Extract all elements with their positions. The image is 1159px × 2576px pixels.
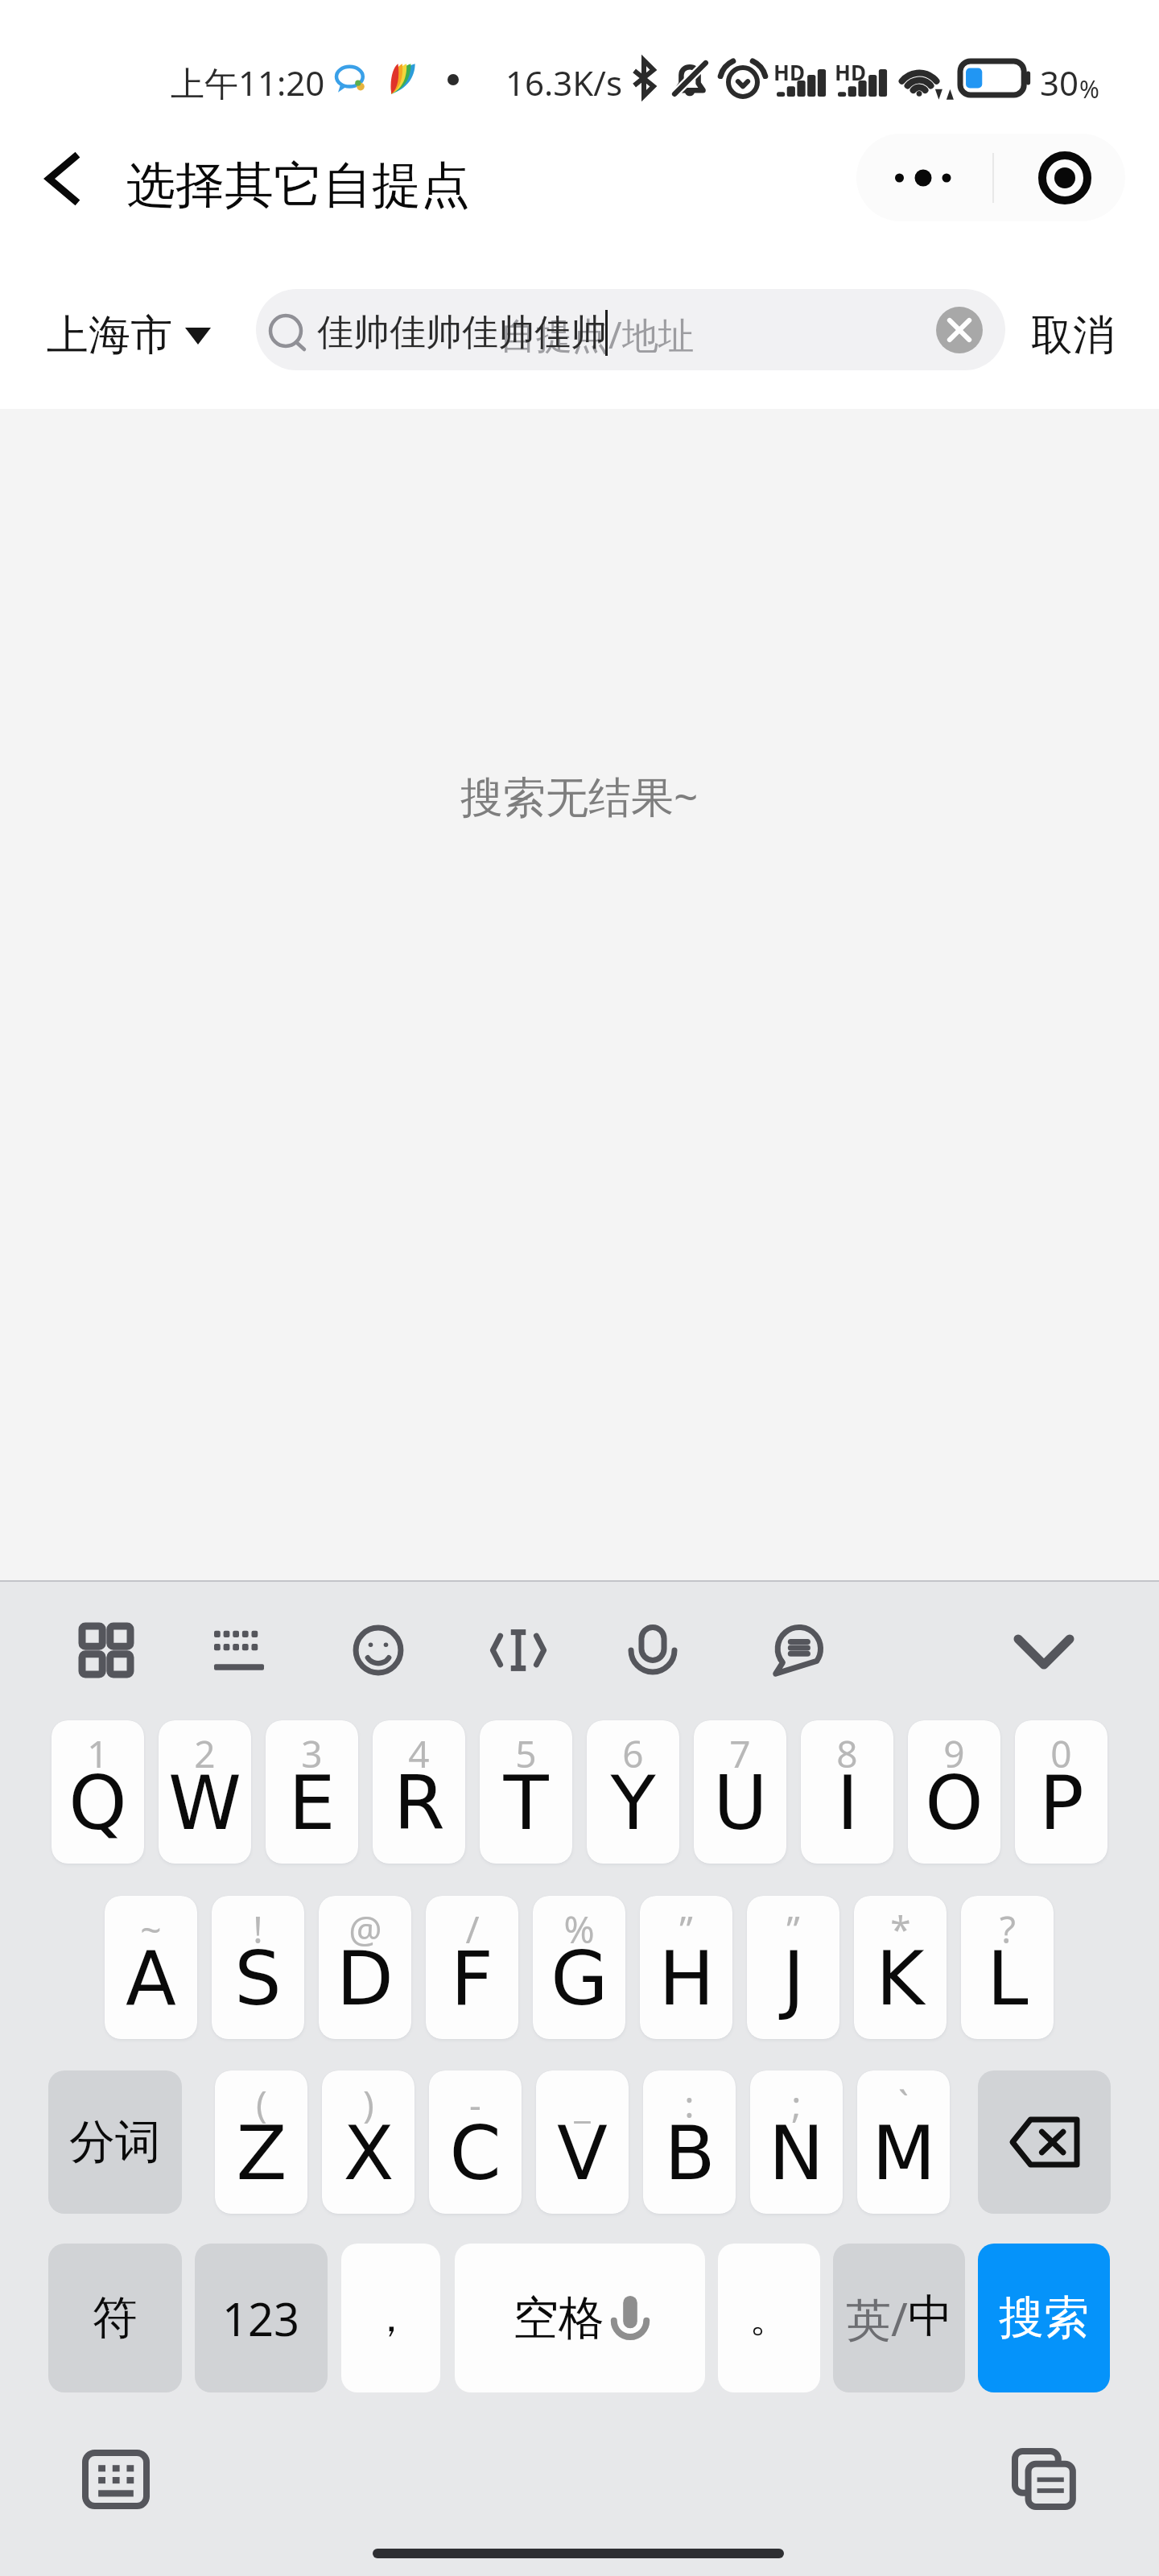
staticText: 5 xyxy=(515,1728,537,1779)
staticText: - xyxy=(469,2079,481,2129)
button[interactable]: * xyxy=(854,1896,947,2039)
staticText: 7 xyxy=(729,1728,751,1779)
staticText: 。 xyxy=(749,2293,790,2343)
button[interactable]: 3 xyxy=(266,1720,358,1864)
button[interactable]: 9 xyxy=(908,1720,1000,1864)
staticText: 9 xyxy=(943,1728,965,1779)
staticText: 2 xyxy=(194,1728,216,1779)
staticText: E xyxy=(288,1761,336,1847)
button[interactable]: 取消 xyxy=(1031,309,1115,362)
staticText: P xyxy=(1039,1761,1084,1847)
button[interactable]: 自提点/地址 xyxy=(256,289,1005,370)
staticText: V xyxy=(557,2111,608,2197)
staticText: ` xyxy=(898,2079,909,2129)
button[interactable]: 关闭 xyxy=(994,134,1125,221)
staticText: Z xyxy=(236,2111,287,2197)
staticText: ( xyxy=(256,2079,267,2129)
staticText: W xyxy=(168,1761,241,1847)
button[interactable]: 5 xyxy=(480,1720,572,1864)
button[interactable]: - xyxy=(429,2070,522,2214)
staticText: 上海市 xyxy=(47,309,172,362)
button[interactable]: 清除 xyxy=(936,307,983,353)
button[interactable]: 收起键盘 xyxy=(1005,1613,1083,1690)
button[interactable]: / xyxy=(426,1896,518,2039)
button[interactable]: ! xyxy=(212,1896,304,2039)
staticText: C xyxy=(449,2111,501,2197)
button[interactable]: ” xyxy=(747,1896,839,2039)
staticText: 上午11:20 xyxy=(171,60,325,100)
staticText: 自提点/地址 xyxy=(500,310,695,359)
button[interactable]: 退格 xyxy=(978,2070,1111,2214)
button[interactable]: ; xyxy=(750,2070,843,2214)
button[interactable]: 空格 xyxy=(455,2244,705,2392)
button[interactable]: 返回 xyxy=(30,147,94,211)
staticText: K xyxy=(876,1936,925,2022)
button[interactable]: 搜索 xyxy=(978,2244,1110,2392)
button[interactable]: ~ xyxy=(105,1896,197,2039)
button[interactable]: 分词 xyxy=(48,2070,182,2214)
staticText: O xyxy=(925,1761,984,1847)
button[interactable]: 0 xyxy=(1015,1720,1107,1864)
button[interactable]: @ xyxy=(319,1896,411,2039)
button[interactable]: ” xyxy=(640,1896,732,2039)
staticText: 英/ xyxy=(846,2288,908,2349)
staticText: H xyxy=(658,1936,715,2022)
staticText: 中 xyxy=(908,2288,953,2345)
button[interactable]: 面板 xyxy=(68,1612,145,1689)
button[interactable]: 7 xyxy=(694,1720,786,1864)
staticText: A xyxy=(126,1936,176,2022)
button[interactable]: 键盘设置 xyxy=(77,2441,155,2518)
button[interactable]: ( xyxy=(215,2070,307,2214)
button[interactable]: 1 xyxy=(52,1720,144,1864)
staticText: 符 xyxy=(93,2289,138,2347)
button[interactable]: 消息 xyxy=(759,1612,836,1689)
staticText: ) xyxy=(363,2079,374,2129)
button[interactable]: 。 xyxy=(718,2244,820,2392)
staticText: B xyxy=(664,2111,716,2197)
button[interactable]: % xyxy=(533,1896,625,2039)
staticText: 30 xyxy=(1040,60,1079,105)
staticText: ; xyxy=(791,2079,802,2129)
staticText: R xyxy=(394,1761,445,1847)
staticText: % xyxy=(563,1904,595,1955)
staticText: 123 xyxy=(222,2288,300,2349)
button[interactable]: 2 xyxy=(159,1720,251,1864)
staticText: 搜索无结果~ xyxy=(460,766,699,824)
staticText: G xyxy=(551,1936,608,2022)
button[interactable]: ) xyxy=(322,2070,415,2214)
staticText: D xyxy=(336,1936,394,2022)
button[interactable]: 英/ xyxy=(833,2244,965,2392)
staticText: _ xyxy=(574,2079,591,2129)
staticText: 分词 xyxy=(69,2113,161,2171)
button[interactable]: 键盘 xyxy=(200,1612,278,1689)
staticText: ” xyxy=(786,1904,800,1955)
button[interactable]: 表情 xyxy=(340,1612,417,1689)
staticText: N xyxy=(769,2111,824,2197)
button[interactable]: 符 xyxy=(48,2244,182,2392)
button[interactable]: 光标 xyxy=(480,1612,557,1689)
staticText: 8 xyxy=(836,1728,858,1779)
staticText: HD xyxy=(773,58,805,86)
staticText: Q xyxy=(68,1761,127,1847)
button[interactable]: _ xyxy=(536,2070,629,2214)
staticText: F xyxy=(451,1936,493,2022)
button[interactable]: ` xyxy=(857,2070,950,2214)
button[interactable]: ， xyxy=(341,2244,440,2392)
staticText: I xyxy=(836,1761,859,1847)
button[interactable]: 123 xyxy=(195,2244,328,2392)
button[interactable]: 剪贴板 xyxy=(1004,2440,1082,2517)
button[interactable]: : xyxy=(643,2070,736,2214)
button[interactable]: 4 xyxy=(373,1720,465,1864)
button[interactable]: 上海市 xyxy=(47,309,211,362)
staticText: U xyxy=(713,1761,768,1847)
staticText: 4 xyxy=(408,1728,430,1779)
button[interactable]: 6 xyxy=(587,1720,679,1864)
staticText: 取消 xyxy=(1031,309,1115,362)
button[interactable]: 8 xyxy=(801,1720,893,1864)
button[interactable]: ? xyxy=(961,1896,1054,2039)
staticText: L xyxy=(987,1936,1029,2022)
button[interactable]: 语音 xyxy=(614,1612,691,1689)
staticText: ~ xyxy=(140,1904,162,1955)
staticText: ! xyxy=(253,1904,263,1955)
button[interactable]: 更多 xyxy=(856,134,992,221)
